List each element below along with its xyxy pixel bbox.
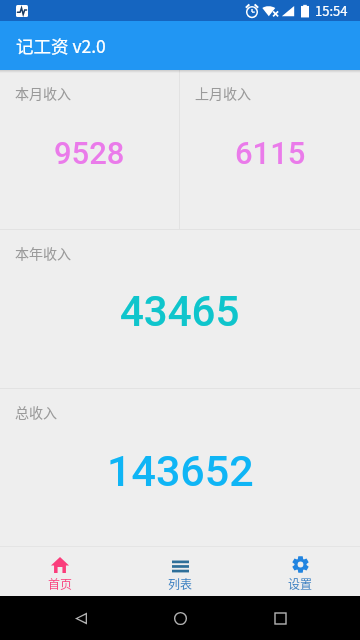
staticText: 9528 [54, 135, 125, 171]
staticText: 本年收入 [15, 243, 71, 263]
button[interactable]: 上月收入 [180, 70, 360, 229]
staticText: 上月收入 [195, 83, 251, 103]
button[interactable]: Home [160, 598, 200, 638]
staticText: 总收入 [15, 402, 57, 422]
staticText: 记工资 v2.0 [16, 33, 106, 58]
staticText: 本月收入 [15, 83, 71, 103]
staticText: 设置 [288, 575, 313, 592]
button[interactable]: 本月收入 [0, 70, 179, 229]
staticText: 6115 [235, 135, 306, 171]
other: App notification [16, 5, 28, 17]
button[interactable]: 列表 [120, 547, 240, 596]
button[interactable]: Recent apps [260, 598, 300, 638]
button[interactable]: 总收入 [0, 389, 360, 546]
button[interactable]: Back [61, 598, 101, 638]
staticText: 15:54 [315, 1, 348, 20]
button[interactable]: 本年收入 [0, 230, 360, 388]
staticText: 143652 [107, 446, 254, 496]
staticText: 列表 [168, 575, 193, 592]
staticText: 43465 [120, 287, 240, 336]
button[interactable]: 首页 [0, 547, 120, 596]
staticText: 首页 [48, 575, 73, 592]
button[interactable]: 设置 [240, 547, 360, 596]
